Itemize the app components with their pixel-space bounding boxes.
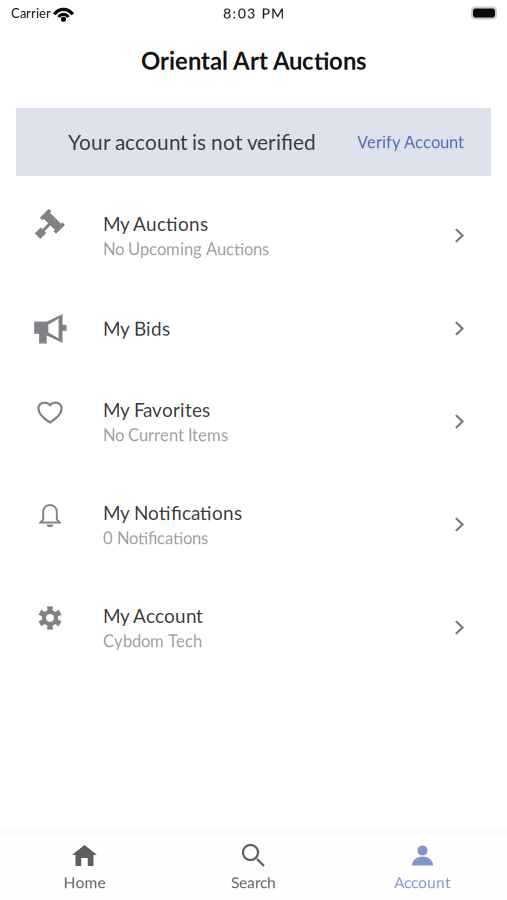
staticText: 8:03 PM [223,4,284,21]
button[interactable]: My Favorites [0,370,507,473]
button[interactable]: My Account [0,576,507,679]
button[interactable]: Search [169,828,338,900]
button[interactable]: My Bids [0,287,507,370]
staticText: My Auctions [103,212,208,235]
staticText: My Bids [103,317,170,340]
button[interactable]: Verify Account [357,132,491,152]
staticText: Carrier [11,5,51,21]
button[interactable]: Home [0,828,169,900]
button[interactable]: Account [338,828,507,900]
staticText: Search [231,873,276,892]
staticText: No Upcoming Auctions [103,239,269,259]
staticText: Home [63,873,105,892]
button[interactable]: My Auctions [0,184,507,287]
staticText: Oriental Art Auctions [141,46,366,75]
staticText: Cybdom Tech [103,631,202,651]
staticText: My Favorites [103,398,210,421]
staticText: Verify Account [357,132,464,152]
staticText: Your account is not verified [68,129,316,154]
staticText: My Notifications [103,501,242,524]
staticText: 0 Notifications [103,528,208,548]
staticText: No Current Items [103,425,228,445]
staticText: My Account [103,604,203,627]
staticText: Account [394,873,451,892]
button[interactable]: My Notifications [0,473,507,576]
